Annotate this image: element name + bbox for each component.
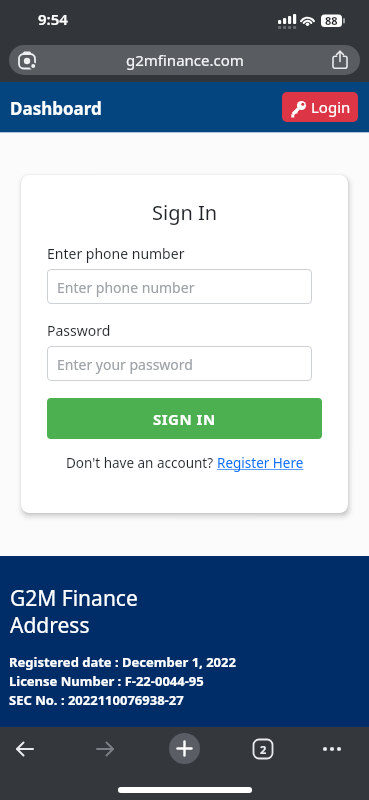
staticText: Registered date : December 1, 2022 <box>9 653 236 671</box>
staticText: SEC No. : 2022110076938-27 <box>9 691 184 709</box>
staticText: 9:54 <box>38 9 68 29</box>
button[interactable]: 2 <box>247 733 279 765</box>
staticText: Enter your password <box>57 355 193 374</box>
staticText: Address <box>10 611 90 640</box>
button[interactable] <box>89 733 121 765</box>
staticText: License Number : F-22-0044-95 <box>9 672 204 690</box>
staticText: Sign In <box>152 199 218 226</box>
staticText: 2 <box>260 742 267 757</box>
staticText: Dashboard <box>10 97 102 120</box>
button[interactable] <box>47 269 312 304</box>
button[interactable]: Register Here <box>217 454 304 472</box>
staticText: 88 <box>325 13 338 28</box>
staticText: Enter phone number <box>47 244 185 263</box>
staticText: g2mfinance.com <box>126 50 244 70</box>
button[interactable] <box>316 733 348 765</box>
button[interactable] <box>47 346 312 381</box>
button[interactable] <box>9 45 360 75</box>
button[interactable]: SIGN IN <box>47 398 322 439</box>
button[interactable] <box>169 733 200 764</box>
staticText: Enter phone number <box>57 278 195 297</box>
staticText: SIGN IN <box>153 409 216 429</box>
staticText: Don't have an account? <box>66 454 217 472</box>
staticText: Login <box>311 97 351 117</box>
button[interactable]: Login <box>282 92 358 122</box>
button[interactable] <box>9 733 41 765</box>
staticText: Password <box>47 321 111 340</box>
staticText: G2M Finance <box>10 584 138 613</box>
